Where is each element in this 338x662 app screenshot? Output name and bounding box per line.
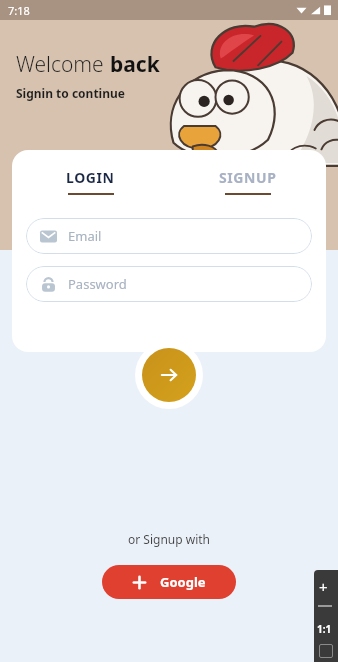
staticText: back	[110, 50, 160, 79]
button[interactable]: Google	[102, 565, 236, 599]
button[interactable]: SIGNUP	[169, 168, 326, 195]
button[interactable]: Email	[26, 218, 312, 254]
staticText: Google	[160, 573, 206, 591]
staticText: 1:1	[317, 622, 332, 636]
button[interactable]: LOGIN	[12, 168, 169, 195]
staticText: +	[319, 577, 328, 597]
staticText: LOGIN	[66, 168, 115, 187]
staticText: 7:18	[8, 3, 30, 18]
staticText: Email	[68, 227, 102, 245]
staticText: Welcome	[16, 50, 110, 79]
button[interactable]: Sign in	[142, 348, 196, 402]
button[interactable]: Password	[26, 266, 312, 302]
staticText: or Signup with	[0, 531, 338, 547]
staticText: Password	[68, 275, 127, 293]
staticText: Signin to continue	[16, 85, 125, 101]
staticText: SIGNUP	[219, 168, 277, 187]
